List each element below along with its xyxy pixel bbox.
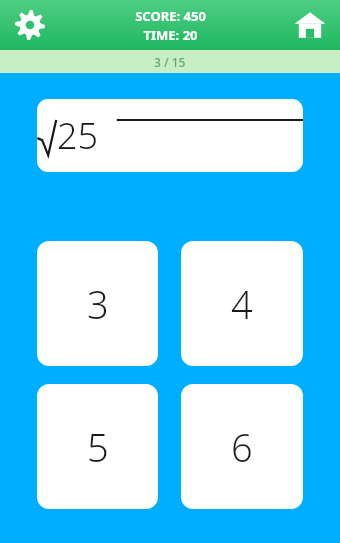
staticText: 3 xyxy=(87,278,109,330)
button[interactable]: Home xyxy=(290,5,330,45)
staticText: TIME: 20 xyxy=(143,26,198,44)
staticText: 5 xyxy=(87,421,109,473)
staticText: 4 xyxy=(231,278,253,330)
button[interactable]: 5 xyxy=(37,384,158,509)
button[interactable]: 4 xyxy=(181,241,303,366)
staticText: 3 / 15 xyxy=(154,54,186,70)
button[interactable]: 3 xyxy=(37,241,158,366)
staticText: SCORE: 450 xyxy=(135,7,206,25)
staticText: 6 xyxy=(231,421,253,473)
button[interactable]: 25 xyxy=(37,99,303,172)
staticText: 25 xyxy=(57,111,99,160)
button[interactable]: 6 xyxy=(181,384,303,509)
button[interactable]: Settings xyxy=(10,5,50,45)
